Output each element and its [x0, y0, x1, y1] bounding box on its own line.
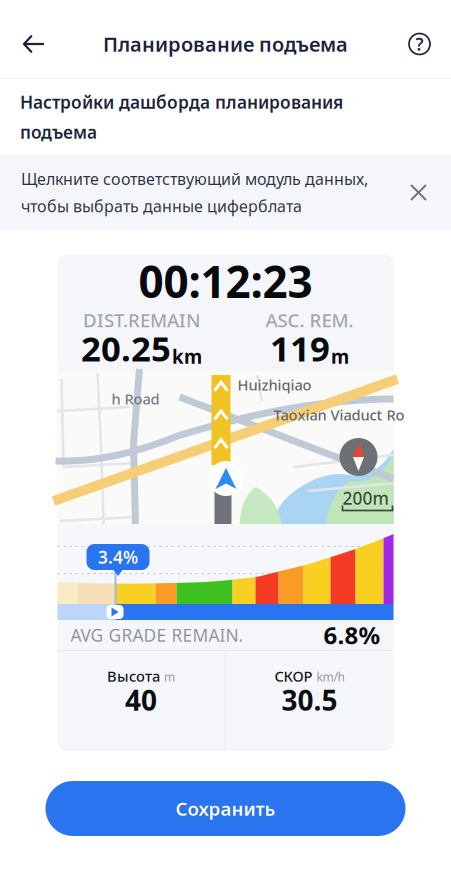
staticText: ?	[415, 32, 423, 55]
staticText: Планирование подъема	[103, 31, 348, 57]
staticText: ASC. REM.	[265, 308, 353, 332]
staticText: 6.8%	[323, 619, 380, 651]
staticText: km/h	[316, 669, 344, 685]
staticText: DIST.REMAIN	[83, 308, 200, 332]
staticText: km	[172, 344, 202, 369]
staticText: m	[164, 669, 175, 685]
staticText: Huizhiqiao	[237, 375, 311, 394]
staticText: подъема	[20, 120, 97, 143]
staticText: Сохранить	[175, 796, 275, 821]
staticText: AVG GRADE REMAIN.	[70, 623, 243, 646]
staticText: чтобы выбрать данные циферблата	[21, 195, 302, 217]
button[interactable]: Help	[398, 22, 451, 65]
staticText: СКОР	[274, 666, 312, 686]
staticText: m	[331, 344, 349, 369]
staticText: Щелкните соответствующий модуль данных,	[21, 168, 368, 189]
staticText: Настройки дашборда планирования	[20, 90, 343, 113]
staticText: 3.4%	[98, 545, 138, 568]
staticText: Taoxian Viaduct Ro	[273, 405, 404, 424]
staticText: h Road	[111, 389, 159, 408]
staticText: 200m	[342, 486, 388, 509]
staticText: 119	[270, 325, 330, 371]
button[interactable]: Сохранить	[45, 781, 405, 836]
staticText: 20.25	[81, 325, 171, 371]
staticText: 00:12:23	[138, 252, 312, 310]
staticText: 30.5	[281, 681, 337, 719]
staticText: Высота	[107, 666, 160, 686]
button[interactable]: Close	[403, 177, 434, 208]
button[interactable]: Back	[0, 22, 67, 66]
staticText: 40	[125, 681, 157, 719]
